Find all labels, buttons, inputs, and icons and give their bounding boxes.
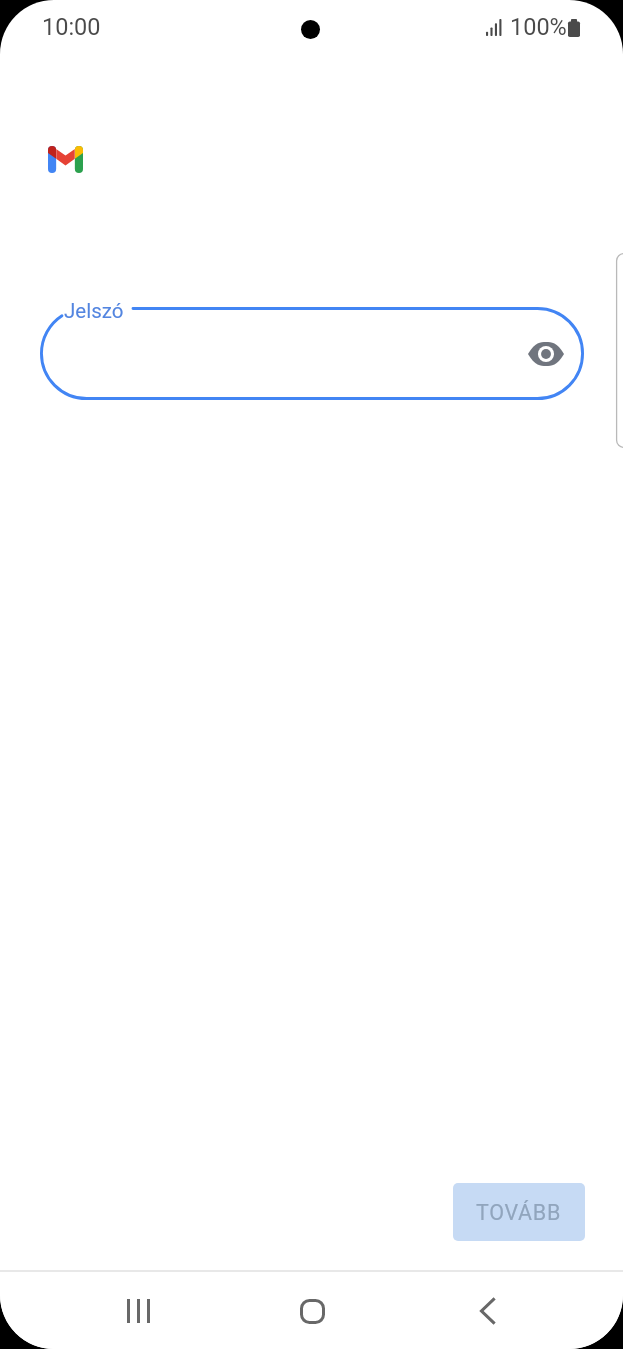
- button[interactable]: TOVÁBB: [453, 1183, 585, 1241]
- button[interactable]: Back: [453, 1278, 522, 1344]
- staticText: 100%: [510, 13, 567, 41]
- button[interactable]: Recent apps: [104, 1278, 173, 1344]
- button[interactable]: Jelszó megjelenítése: [522, 330, 570, 378]
- staticText: Jelszó: [64, 299, 124, 323]
- staticText: 10:00: [42, 13, 101, 41]
- button[interactable]: Home: [278, 1278, 347, 1344]
- staticText: TOVÁBB: [476, 1200, 562, 1225]
